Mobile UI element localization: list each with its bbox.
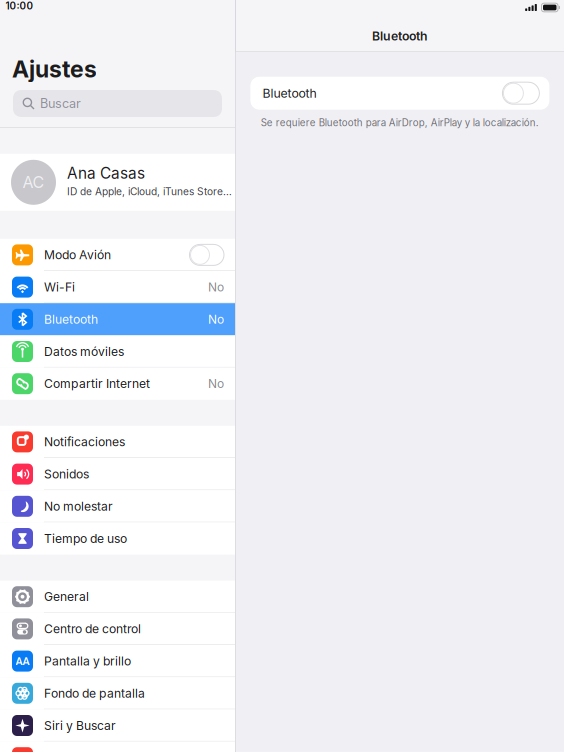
button[interactable]: AC: [0, 154, 235, 211]
staticText: 10:00: [5, 0, 33, 12]
staticText: Siri y Buscar: [44, 718, 116, 733]
staticText: Fondo de pantalla: [44, 686, 145, 701]
button[interactable]: Bluetooth: [0, 303, 235, 335]
button[interactable]: Sonidos: [0, 458, 235, 490]
staticText: Notificaciones: [44, 435, 125, 449]
staticText: Bluetooth: [372, 29, 428, 43]
staticText: AA: [15, 654, 29, 668]
staticText: Sonidos: [44, 467, 89, 481]
button[interactable]: Centro de control: [0, 613, 235, 645]
staticText: Buscar: [40, 96, 81, 111]
staticText: No molestar: [44, 499, 113, 514]
button[interactable]: Notificaciones: [0, 426, 235, 458]
staticText: AC: [22, 173, 44, 192]
staticText: Se requiere Bluetooth para AirDrop, AirP…: [261, 117, 539, 129]
button[interactable]: Compartir Internet: [0, 368, 235, 400]
staticText: No: [208, 280, 224, 294]
staticText: Datos móviles: [44, 344, 124, 359]
staticText: ID de Apple, iCloud, iTunes Store…: [67, 185, 232, 198]
button[interactable]: No molestar: [0, 490, 235, 522]
staticText: Bluetooth: [262, 86, 316, 101]
button[interactable]: General: [0, 581, 235, 613]
staticText: No: [208, 376, 224, 391]
button[interactable]: Tiempo de uso: [0, 522, 235, 555]
staticText: Centro de control: [44, 622, 141, 636]
staticText: Tiempo de uso: [44, 531, 127, 546]
staticText: Pantalla y brillo: [44, 654, 131, 668]
staticText: Compartir Internet: [44, 376, 150, 391]
button[interactable]: Bluetooth: [236, 77, 564, 110]
button[interactable]: Face ID: [0, 742, 235, 752]
button[interactable]: Siri y Buscar: [0, 709, 235, 742]
staticText: Bluetooth: [44, 312, 98, 327]
staticText: General: [44, 589, 89, 604]
button[interactable]: AA: [0, 645, 235, 677]
staticText: Modo Avión: [44, 248, 111, 262]
staticText: Wi-Fi: [44, 280, 75, 294]
button[interactable]: Fondo de pantalla: [0, 677, 235, 709]
staticText: Ana Casas: [67, 164, 145, 182]
staticText: No: [208, 312, 224, 326]
staticText: Ajustes: [12, 55, 97, 83]
button[interactable]: Datos móviles: [0, 335, 235, 368]
button[interactable]: Wi-Fi: [0, 271, 235, 303]
button[interactable]: Modo Avión: [0, 239, 235, 271]
